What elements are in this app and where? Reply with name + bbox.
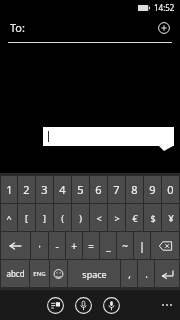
button[interactable]: 0 — [162, 176, 179, 203]
button[interactable]: , — [121, 260, 137, 287]
button[interactable]: ~ — [117, 232, 133, 259]
button[interactable]: Previous symbols page — [1, 232, 30, 259]
button[interactable]: 9 — [144, 176, 161, 203]
staticText: abcd — [6, 268, 25, 279]
button[interactable] — [43, 127, 174, 146]
button[interactable]: < — [90, 204, 107, 231]
staticText: 4 — [59, 182, 66, 197]
button[interactable]: € — [126, 204, 143, 231]
button[interactable]: [ — [18, 204, 35, 231]
staticText: $ — [150, 212, 156, 224]
button[interactable]: ¥ — [162, 204, 179, 231]
button[interactable]: 8 — [126, 176, 143, 203]
staticText: = — [88, 239, 94, 253]
button[interactable]: 6 — [90, 176, 107, 203]
staticText: , — [128, 267, 131, 281]
staticText: ENG — [33, 270, 46, 278]
button[interactable]: Emoji — [50, 260, 67, 287]
staticText: ] — [43, 212, 46, 224]
staticText: 2 — [23, 182, 30, 197]
staticText: To: — [10, 20, 25, 35]
button[interactable]: Attach message — [47, 297, 64, 314]
staticText: 7 — [113, 182, 120, 197]
staticText: | — [139, 239, 145, 253]
staticText: € — [132, 212, 138, 224]
button[interactable]: | — [134, 232, 150, 259]
button[interactable]: 4 — [54, 176, 71, 203]
button[interactable]: Enter — [155, 260, 179, 287]
button[interactable]: ( — [54, 204, 71, 231]
button[interactable]: 5 — [72, 176, 89, 203]
staticText: 14:52 — [154, 2, 175, 13]
staticText: ~ — [122, 239, 128, 253]
button[interactable]: Add recipient — [158, 22, 170, 34]
staticText: + — [71, 239, 77, 253]
staticText: 8 — [131, 182, 138, 197]
button[interactable]: - — [49, 232, 65, 259]
button[interactable]: ^ — [1, 204, 17, 231]
staticText: . — [145, 267, 148, 281]
staticText: 1 — [6, 182, 13, 197]
button[interactable]: $ — [144, 204, 161, 231]
staticText: < — [96, 212, 102, 224]
button[interactable]: 1 — [1, 176, 17, 203]
button[interactable]: ) — [72, 204, 89, 231]
button[interactable]: _ — [100, 232, 116, 259]
staticText: 9 — [149, 182, 156, 197]
staticText: [ — [25, 212, 28, 224]
staticText: > — [114, 212, 120, 224]
staticText: ¥ — [168, 212, 174, 224]
button[interactable]: space — [68, 260, 120, 287]
button[interactable]: 7 — [108, 176, 125, 203]
button[interactable]: 2 — [18, 176, 35, 203]
button[interactable]: + — [66, 232, 82, 259]
button[interactable]: ] — [36, 204, 53, 231]
button[interactable]: Attach file — [75, 297, 92, 314]
staticText: 6 — [95, 182, 102, 197]
button[interactable]: > — [108, 204, 125, 231]
button[interactable]: 3 — [36, 176, 53, 203]
staticText: _ — [106, 239, 111, 253]
button[interactable]: . — [138, 260, 154, 287]
staticText: ( — [61, 212, 64, 224]
staticText: 3 — [41, 182, 48, 197]
staticText: ) — [79, 212, 82, 224]
button[interactable]: More options — [158, 300, 176, 310]
button[interactable]: ENG — [30, 260, 49, 287]
staticText: space — [82, 268, 107, 280]
button[interactable]: Backspace — [151, 232, 179, 259]
staticText: - — [55, 239, 59, 253]
button[interactable]: abcd — [1, 260, 29, 287]
staticText: ^ — [6, 212, 12, 224]
staticText: · — [38, 239, 41, 253]
button[interactable]: = — [83, 232, 99, 259]
button[interactable]: Voice message — [103, 297, 120, 314]
staticText: 5 — [77, 182, 84, 197]
button[interactable]: · — [31, 232, 48, 259]
staticText: 0 — [167, 182, 174, 197]
